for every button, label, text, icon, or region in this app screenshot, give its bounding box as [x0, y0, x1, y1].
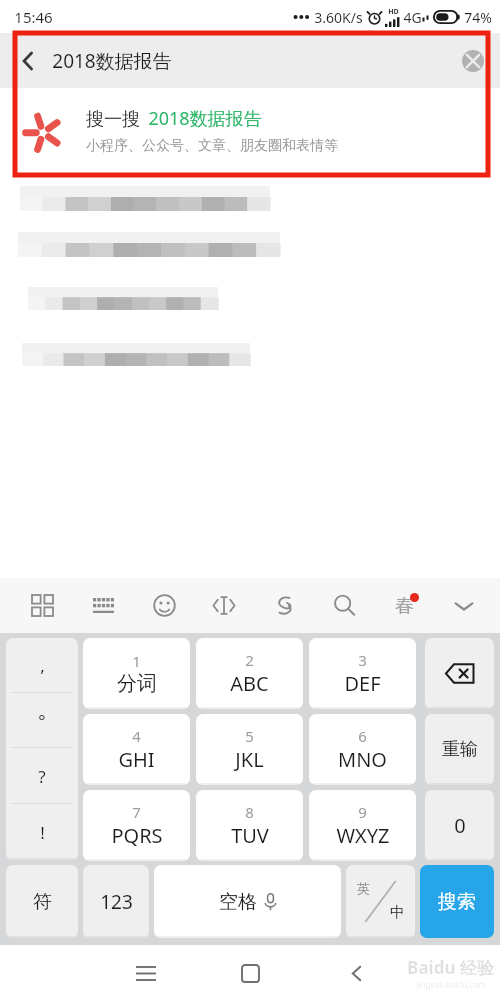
button[interactable]: 123 — [83, 865, 149, 938]
button[interactable]: 5 — [196, 714, 303, 785]
staticText: 74% — [464, 8, 492, 27]
staticText: MNO — [338, 746, 387, 773]
staticText: 搜一搜 — [86, 108, 140, 131]
button[interactable]: 6 — [309, 714, 416, 785]
staticText: HD — [388, 7, 399, 17]
button[interactable]: Panel — [12, 578, 73, 633]
button[interactable]: 7 — [83, 790, 190, 861]
button[interactable]: 3 — [309, 638, 416, 709]
staticText: DEF — [344, 670, 381, 697]
staticText: 2 — [245, 650, 254, 670]
staticText: 3.60K/s — [314, 8, 363, 27]
button[interactable]: 4 — [83, 714, 190, 785]
staticText: 2018数据报告 — [52, 48, 172, 74]
staticText: 春 — [395, 594, 414, 618]
staticText: 符 — [33, 890, 52, 914]
button[interactable]: ? — [6, 748, 78, 804]
staticText: 0 — [454, 812, 466, 839]
button[interactable]: Switch language — [346, 865, 415, 938]
staticText: 4 — [132, 726, 141, 746]
staticText: 7 — [132, 802, 141, 822]
staticText: jingyan.baidu.com — [416, 979, 486, 990]
button[interactable]: 2 — [196, 638, 303, 709]
staticText: 1 — [132, 651, 141, 671]
staticText: Baidu 经验 — [407, 956, 494, 979]
button[interactable]: 符 — [6, 865, 78, 938]
button[interactable]: Back — [333, 950, 379, 996]
staticText: 重输 — [442, 738, 478, 761]
button[interactable]: Clipboard — [254, 578, 314, 633]
staticText: 5 — [245, 726, 254, 746]
staticText: JKL — [235, 746, 264, 773]
staticText: GHI — [118, 746, 155, 773]
button[interactable]: 搜一搜 — [0, 88, 500, 173]
button[interactable]: ! — [6, 804, 78, 860]
staticText: 空格 — [219, 890, 257, 914]
button[interactable]: 9 — [309, 790, 416, 861]
button[interactable]: Cursor — [194, 578, 254, 633]
staticText: 9 — [358, 802, 367, 822]
button[interactable]: Keyboard — [73, 578, 134, 633]
staticText: ° — [38, 709, 46, 732]
button[interactable]: Theme — [374, 578, 434, 633]
staticText: WXYZ — [336, 822, 390, 849]
staticText: 123 — [100, 889, 133, 915]
button[interactable]: Recents — [123, 950, 169, 996]
staticText: 分词 — [117, 671, 157, 696]
staticText: 4G — [403, 8, 422, 27]
staticText: ? — [38, 765, 46, 788]
staticText: TUV — [231, 822, 269, 849]
button[interactable]: ° — [6, 693, 78, 748]
button[interactable]: Emoji — [134, 578, 194, 633]
staticText: , — [40, 654, 45, 677]
staticText: 2018数据报告 — [148, 106, 262, 131]
button[interactable]: Search — [314, 578, 374, 633]
staticText: 15:46 — [14, 7, 53, 27]
staticText: 中 — [390, 903, 405, 922]
staticText: 3 — [358, 650, 367, 670]
button[interactable]: Collapse — [434, 578, 494, 633]
staticText: ! — [40, 821, 45, 844]
button[interactable]: 0 — [425, 790, 494, 861]
button[interactable]: , — [6, 638, 78, 693]
button[interactable]: 重输 — [425, 714, 494, 785]
button[interactable]: Back — [8, 41, 48, 81]
staticText: PQRS — [111, 822, 163, 849]
button[interactable]: Clear — [456, 44, 490, 78]
button[interactable]: 1 — [83, 638, 190, 709]
button[interactable]: 空格 — [154, 865, 341, 938]
staticText: 8 — [245, 802, 254, 822]
button[interactable]: 搜索 — [420, 865, 494, 938]
button[interactable]: Home — [227, 950, 273, 996]
staticText: 小程序、公众号、文章、朋友圈和表情等 — [86, 137, 338, 155]
staticText: 英 — [357, 880, 370, 896]
staticText: 搜索 — [438, 890, 476, 914]
button[interactable]: 8 — [196, 790, 303, 861]
button[interactable]: Delete — [425, 638, 494, 709]
staticText: 6 — [358, 726, 367, 746]
staticText: ABC — [230, 670, 269, 697]
